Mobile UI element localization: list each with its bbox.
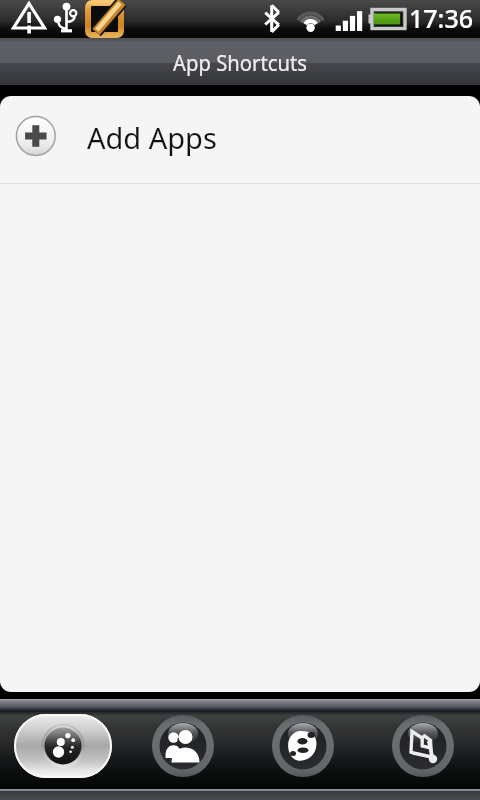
button[interactable]: Phone xyxy=(272,715,334,777)
button[interactable]: All apps xyxy=(14,714,112,778)
button[interactable]: Personalize xyxy=(392,715,454,777)
staticText: Add Apps xyxy=(87,118,217,157)
staticText: App Shortcuts xyxy=(173,47,307,77)
button[interactable]: Contacts xyxy=(152,715,214,777)
button[interactable]: Add Apps xyxy=(0,96,480,183)
staticText: 17:36 xyxy=(409,1,474,35)
